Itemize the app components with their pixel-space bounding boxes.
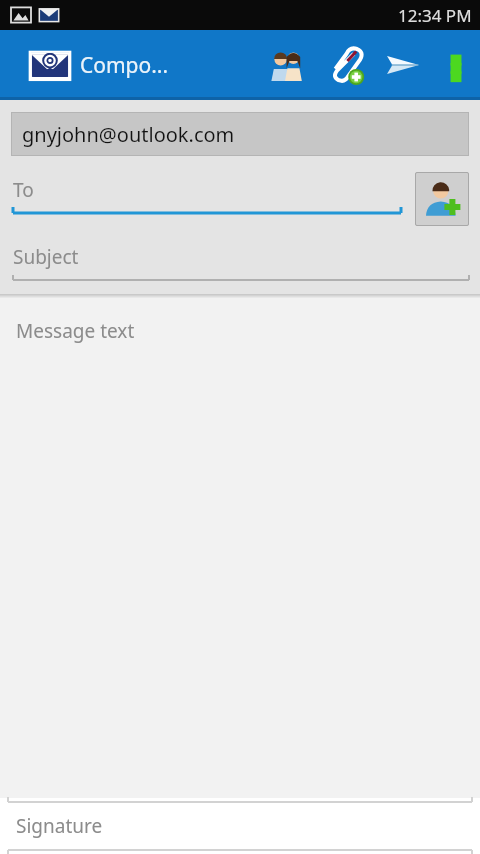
button[interactable]: gnyjohn@outlook.com <box>11 112 469 156</box>
staticText: Message text <box>16 318 135 344</box>
button[interactable]: Subject <box>13 238 480 276</box>
button[interactable]: Contacts <box>258 36 316 94</box>
button[interactable]: Add contact <box>415 172 469 226</box>
staticText: gnyjohn@outlook.com <box>22 121 235 148</box>
button[interactable]: Signature <box>16 804 480 848</box>
button[interactable]: Send <box>374 36 432 94</box>
staticText: To <box>13 177 34 203</box>
button[interactable]: More options <box>432 41 480 89</box>
staticText: 12:34 PM <box>398 4 472 27</box>
button[interactable]: Attach file <box>316 36 374 94</box>
button[interactable]: To <box>13 171 411 209</box>
staticText: Compo... <box>80 51 169 80</box>
button[interactable]: Message text <box>0 298 480 798</box>
staticText: Subject <box>13 244 79 270</box>
staticText: Signature <box>16 813 103 839</box>
button[interactable]: Compo... <box>28 37 169 93</box>
